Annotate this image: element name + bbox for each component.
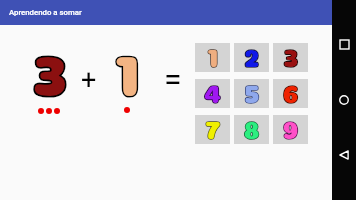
button[interactable]	[234, 115, 269, 144]
staticText: =	[164, 60, 182, 88]
button[interactable]	[273, 43, 308, 72]
button[interactable]: Home	[334, 90, 354, 110]
button[interactable]	[234, 79, 269, 108]
staticText: Aprendendo a somar	[9, 8, 82, 17]
button[interactable]	[195, 43, 230, 72]
button[interactable]	[273, 79, 308, 108]
staticText: +	[81, 64, 97, 92]
button[interactable]	[195, 79, 230, 108]
button[interactable]	[273, 115, 308, 144]
button[interactable]	[195, 115, 230, 144]
button[interactable]: Recent apps	[334, 34, 354, 54]
button[interactable]	[234, 43, 269, 72]
button[interactable]: Back	[334, 145, 354, 165]
